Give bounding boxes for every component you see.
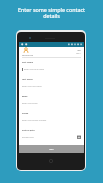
button[interactable]: Last Name — [22, 78, 81, 95]
staticText: Phone — [22, 112, 29, 115]
staticText: Enter your first name — [24, 68, 44, 71]
staticText: Next — [77, 49, 81, 51]
button[interactable]: Next — [19, 145, 84, 153]
staticText: Step 1 — [76, 52, 81, 54]
button[interactable]: Next — [76, 47, 81, 54]
staticText: Enter your email — [22, 102, 38, 105]
staticText: Date of birth — [22, 129, 35, 132]
staticText: Enter some simple contact details — [0, 6, 103, 19]
button[interactable]: Phone — [22, 112, 81, 129]
other: Profile — [24, 48, 28, 53]
staticText: Email — [22, 95, 28, 98]
button[interactable]: Date of birth — [22, 129, 81, 145]
staticText: dd/mm/yyyy — [22, 136, 34, 139]
staticText: Enter your phone number — [22, 119, 47, 122]
staticText: Next — [49, 148, 54, 151]
button[interactable]: Email — [22, 95, 81, 112]
staticText: Personal info — [22, 54, 34, 56]
staticText: Last Name — [22, 78, 33, 81]
staticText: Enter your last name — [22, 85, 42, 88]
staticText: First Name — [22, 61, 33, 64]
button[interactable]: First Name — [22, 61, 81, 78]
other: Pick date — [77, 135, 81, 139]
